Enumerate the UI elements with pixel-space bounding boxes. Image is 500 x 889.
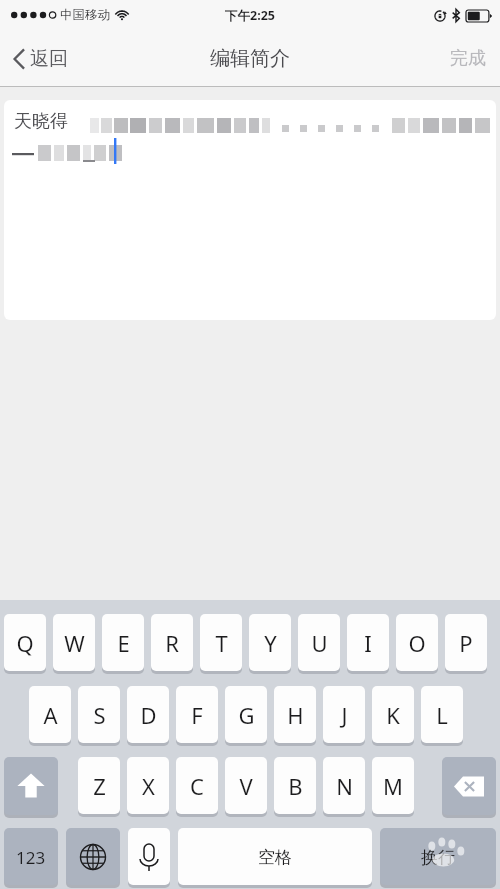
- button[interactable]: Q: [4, 614, 46, 672]
- staticText: 中国移动: [60, 7, 110, 23]
- staticText: Y: [264, 628, 277, 658]
- staticText: E: [117, 628, 130, 658]
- button[interactable]: A: [29, 686, 71, 744]
- staticText: L: [436, 700, 448, 730]
- button[interactable]: K: [372, 686, 414, 744]
- staticText: R: [165, 628, 179, 658]
- staticText: X: [142, 771, 155, 801]
- staticText: 空格: [258, 847, 292, 868]
- button[interactable]: M: [372, 757, 414, 815]
- staticText: V: [239, 771, 253, 801]
- staticText: 天晓得: [14, 110, 68, 133]
- button[interactable]: N: [323, 757, 365, 815]
- button[interactable]: B: [274, 757, 316, 815]
- button[interactable]: 换行: [380, 828, 496, 886]
- staticText: P: [459, 628, 473, 658]
- button[interactable]: F: [176, 686, 218, 744]
- button[interactable]: 空格: [178, 828, 372, 886]
- staticText: 完成: [450, 47, 486, 70]
- staticText: 换行: [421, 847, 455, 868]
- button[interactable]: Switch keyboard: [66, 828, 120, 886]
- staticText: M: [383, 771, 403, 801]
- staticText: C: [190, 771, 204, 801]
- staticText: W: [64, 628, 85, 658]
- staticText: B: [288, 771, 303, 801]
- button[interactable]: I: [347, 614, 389, 672]
- staticText: D: [140, 700, 157, 730]
- button[interactable]: Dictation: [128, 828, 170, 886]
- staticText: S: [93, 700, 106, 730]
- staticText: H: [287, 700, 304, 730]
- button[interactable]: P: [445, 614, 487, 672]
- button[interactable]: O: [396, 614, 438, 672]
- staticText: K: [386, 700, 400, 730]
- button[interactable]: D: [127, 686, 169, 744]
- button[interactable]: 天晓得: [4, 100, 496, 320]
- button[interactable]: H: [274, 686, 316, 744]
- staticText: I: [364, 628, 372, 658]
- staticText: 返回: [30, 47, 68, 71]
- button[interactable]: T: [200, 614, 242, 672]
- staticText: Z: [93, 771, 106, 801]
- button[interactable]: W: [53, 614, 95, 672]
- button[interactable]: U: [298, 614, 340, 672]
- button[interactable]: J: [323, 686, 365, 744]
- button[interactable]: X: [127, 757, 169, 815]
- button[interactable]: G: [225, 686, 267, 744]
- staticText: T: [215, 628, 228, 658]
- staticText: J: [341, 700, 348, 730]
- button[interactable]: Shift: [4, 757, 58, 816]
- button[interactable]: Y: [249, 614, 291, 672]
- button[interactable]: V: [225, 757, 267, 815]
- staticText: O: [408, 628, 426, 658]
- button[interactable]: C: [176, 757, 218, 815]
- staticText: U: [311, 628, 328, 658]
- staticText: 编辑简介: [210, 46, 290, 71]
- button[interactable]: 完成: [436, 37, 500, 80]
- staticText: 123: [16, 846, 46, 869]
- button[interactable]: E: [102, 614, 144, 672]
- button[interactable]: L: [421, 686, 463, 744]
- button[interactable]: Delete: [442, 757, 496, 816]
- staticText: G: [238, 700, 255, 730]
- button[interactable]: Z: [78, 757, 120, 815]
- button[interactable]: 123: [4, 828, 58, 886]
- button[interactable]: S: [78, 686, 120, 744]
- staticText: N: [336, 771, 353, 801]
- staticText: 下午2:25: [225, 7, 275, 24]
- staticText: Q: [16, 628, 34, 658]
- staticText: A: [43, 700, 58, 730]
- staticText: F: [191, 700, 203, 730]
- button[interactable]: 返回: [0, 39, 84, 79]
- button[interactable]: R: [151, 614, 193, 672]
